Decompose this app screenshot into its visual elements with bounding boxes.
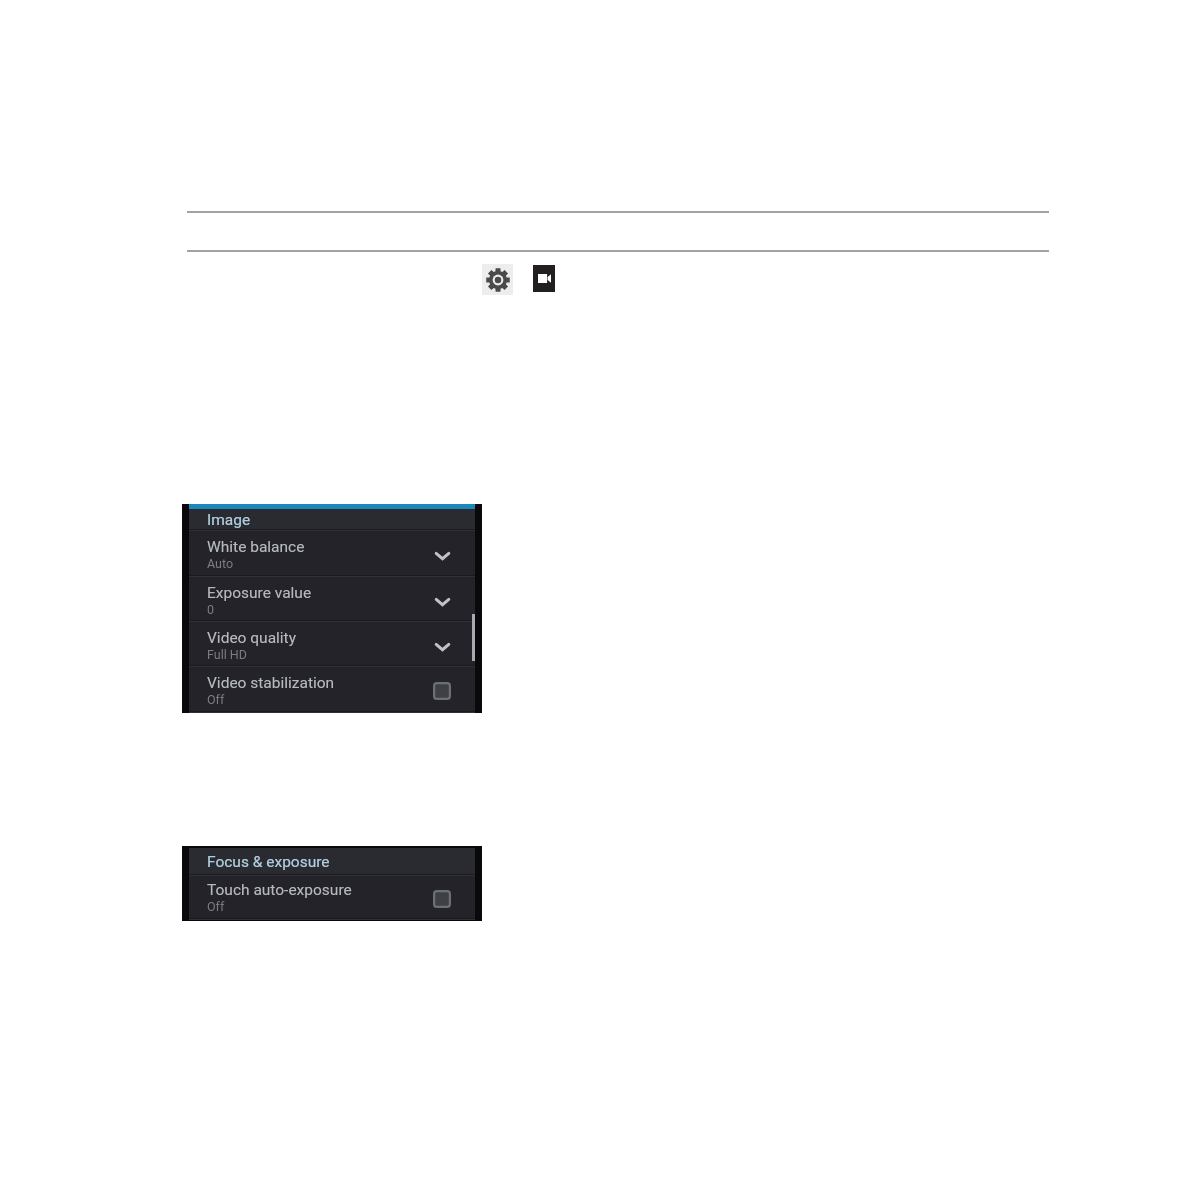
staticText: Auto: [207, 556, 234, 571]
staticText: Focus & exposure: [207, 853, 330, 871]
staticText: Image: [207, 511, 251, 529]
staticText: White balance: [207, 538, 305, 556]
staticText: Full HD: [207, 647, 247, 662]
staticText: 0: [207, 602, 215, 617]
staticText: Off: [207, 899, 225, 914]
button[interactable]: Exposure value: [189, 577, 475, 622]
staticText: Off: [207, 692, 225, 707]
staticText: Video quality: [207, 629, 297, 647]
button[interactable]: Settings: [482, 264, 513, 295]
button[interactable]: Touch auto-exposure: [189, 876, 475, 920]
staticText: Video stabilization: [207, 674, 335, 692]
button[interactable]: White balance: [189, 531, 475, 577]
button[interactable]: Video quality: [189, 622, 475, 667]
staticText: Exposure value: [207, 584, 312, 602]
staticText: Touch auto-exposure: [207, 881, 352, 899]
button[interactable]: Video stabilization: [189, 667, 475, 713]
button[interactable]: Switch to video: [533, 265, 555, 292]
